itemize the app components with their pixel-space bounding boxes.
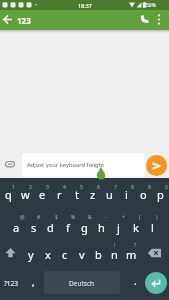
staticText: p (157, 187, 164, 202)
staticText: o (140, 187, 147, 202)
staticText: Adjust your keyboard height (27, 161, 105, 169)
staticText: d (47, 220, 54, 235)
button[interactable] (153, 12, 165, 27)
staticText: 0 (165, 184, 168, 191)
staticText: ?123 (4, 279, 18, 288)
button[interactable]: n (106, 245, 123, 263)
button[interactable]: e (34, 185, 51, 203)
staticText: Deutsch (69, 279, 95, 288)
staticText: u (106, 187, 113, 202)
staticText: k (133, 220, 139, 235)
button[interactable]: s (25, 218, 42, 236)
button[interactable]: h (93, 218, 110, 236)
button[interactable]: ?123 (0, 276, 23, 290)
staticText: i (125, 187, 128, 202)
button[interactable] (2, 245, 19, 261)
button[interactable]: g (76, 218, 93, 236)
staticText: v (79, 247, 85, 262)
staticText: n (111, 247, 118, 262)
button[interactable]: b (90, 245, 107, 263)
button[interactable]: x (39, 245, 56, 263)
staticText: l (151, 220, 154, 235)
staticText: ( (139, 214, 141, 221)
staticText: z (90, 187, 96, 202)
staticText: s (31, 220, 37, 235)
staticText: b (95, 247, 102, 262)
staticText: 50% (146, 2, 156, 9)
button[interactable]: z (84, 185, 101, 203)
staticText: 6 (97, 184, 100, 191)
staticText: 123 (17, 15, 31, 26)
staticText: # (37, 214, 41, 221)
button[interactable]: w (17, 185, 34, 203)
staticText: @ (20, 214, 25, 221)
button[interactable] (3, 158, 17, 171)
staticText: % (71, 214, 76, 221)
staticText: 7 (114, 184, 117, 191)
button[interactable]: k (127, 218, 144, 236)
staticText: x (45, 247, 51, 262)
button[interactable]: a (8, 218, 25, 236)
staticText: , (32, 275, 35, 289)
button[interactable]: . (129, 274, 141, 288)
button[interactable]: t (68, 185, 85, 203)
staticText: r (57, 187, 62, 202)
staticText: y (28, 247, 34, 262)
staticText: $ (55, 214, 58, 221)
button[interactable]: i (118, 185, 135, 203)
button[interactable] (1, 12, 15, 27)
staticText: t (75, 187, 79, 202)
button[interactable]: u (101, 185, 118, 203)
button[interactable]: f (59, 218, 76, 236)
staticText: a (13, 220, 20, 235)
staticText: 8 (131, 184, 134, 191)
button[interactable]: p (152, 185, 169, 203)
button[interactable]: y (22, 245, 39, 263)
button[interactable]: m (123, 245, 140, 263)
button[interactable]: 123 (11, 12, 37, 28)
button[interactable] (137, 12, 150, 27)
staticText: g (81, 220, 88, 235)
staticText: 9 (148, 184, 151, 191)
staticText: q (5, 187, 12, 202)
button[interactable]: v (73, 245, 90, 263)
staticText: j (117, 220, 120, 235)
staticText: + (122, 214, 125, 221)
staticText: e (39, 187, 46, 202)
button[interactable]: l (144, 218, 161, 236)
button[interactable]: c (56, 245, 73, 263)
button[interactable]: o (135, 185, 152, 203)
button[interactable] (44, 271, 120, 294)
staticText: - (105, 214, 107, 221)
staticText: ! (114, 242, 116, 249)
staticText: 2 (29, 184, 32, 191)
staticText: ) (156, 214, 158, 221)
button[interactable]: r (51, 185, 68, 203)
button[interactable] (146, 155, 167, 176)
staticText: 18:37 (78, 2, 92, 9)
staticText: w (21, 187, 30, 202)
staticText: 4 (63, 184, 66, 191)
staticText: 1 (12, 184, 15, 191)
button[interactable] (145, 272, 167, 294)
button[interactable]: q (0, 185, 17, 203)
staticText: c (62, 247, 68, 262)
button[interactable] (22, 153, 145, 177)
button[interactable] (146, 245, 165, 261)
staticText: 5 (80, 184, 83, 191)
button[interactable]: , (27, 275, 39, 289)
button[interactable]: j (110, 218, 127, 236)
staticText: f (66, 220, 70, 235)
staticText: & (88, 214, 92, 221)
staticText: 3 (46, 184, 49, 191)
staticText: . (134, 274, 137, 288)
staticText: ? (134, 242, 137, 249)
staticText: h (98, 220, 105, 235)
staticText: m (126, 247, 137, 262)
button[interactable]: d (42, 218, 59, 236)
